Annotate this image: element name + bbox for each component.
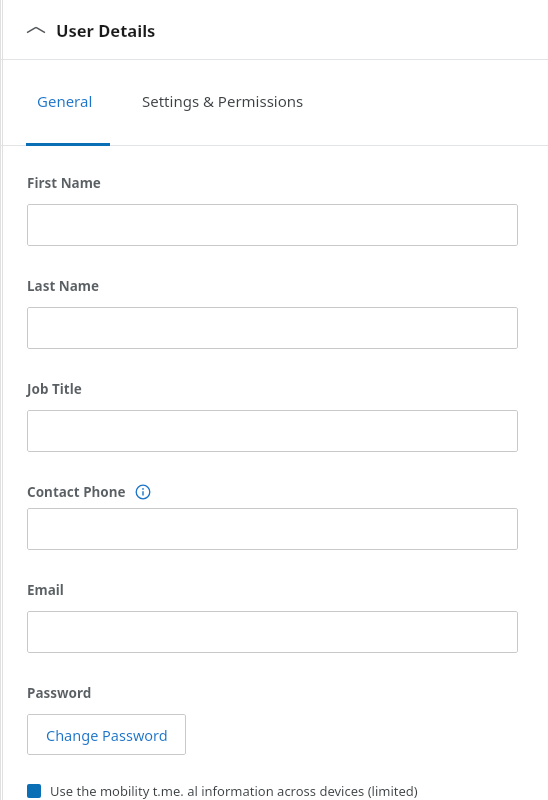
staticText: Settings & Permissions [142, 91, 304, 111]
staticText: Contact Phone [27, 483, 126, 501]
button[interactable] [27, 611, 518, 653]
button[interactable] [27, 410, 518, 452]
button[interactable]: Collapse User Details [0, 0, 548, 60]
staticText: Email [27, 581, 64, 599]
staticText: First Name [27, 174, 101, 192]
staticText: Use the mobility t.me. al information ac… [50, 782, 418, 800]
button[interactable] [27, 204, 518, 246]
staticText: User Details [56, 19, 156, 41]
button[interactable]: Settings & Permissions [142, 60, 304, 142]
staticText: Last Name [27, 277, 100, 295]
button[interactable] [27, 307, 518, 349]
other: Collapse User Details [26, 20, 46, 40]
staticText: Change Password [46, 725, 168, 745]
button[interactable]: Change Password [27, 714, 186, 755]
staticText: General [37, 91, 93, 111]
staticText: Password [27, 684, 92, 702]
button[interactable]: General [37, 60, 93, 142]
button[interactable] [27, 508, 518, 550]
button[interactable]: Use the mobility t.me. al information ac… [27, 782, 518, 800]
staticText: Job Title [27, 380, 82, 398]
button[interactable]: More information about contact phone [134, 483, 152, 501]
